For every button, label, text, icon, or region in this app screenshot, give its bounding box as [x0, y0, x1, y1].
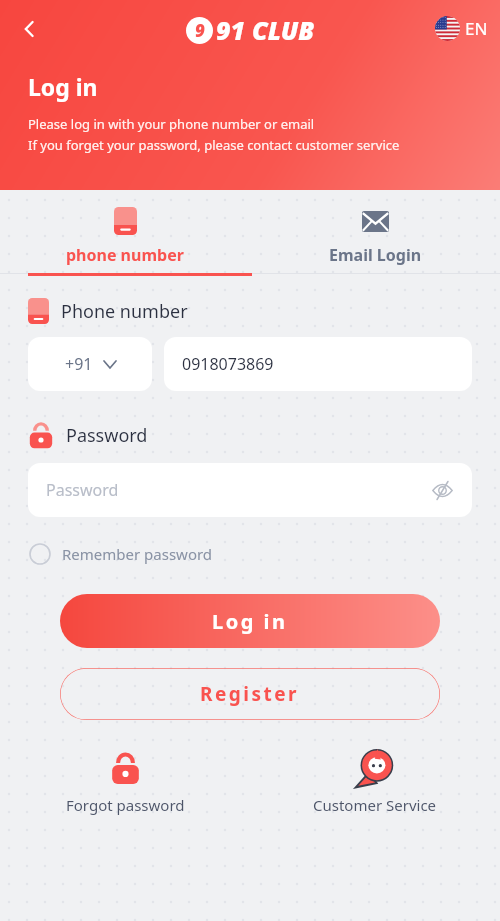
button[interactable]: Forgot password [0, 745, 250, 818]
staticText: Email Login [329, 244, 422, 266]
staticText: Forgot password [66, 795, 185, 815]
button[interactable]: 9 [186, 13, 315, 47]
button[interactable]: Password [28, 463, 472, 517]
staticText: Phone number [61, 299, 188, 324]
button[interactable]: Back [7, 7, 51, 51]
staticText: 0918073869 [182, 353, 274, 375]
staticText: +91 [65, 353, 93, 375]
button[interactable]: Register [60, 668, 440, 720]
button[interactable]: 0918073869 [164, 337, 472, 391]
staticText: Please log in with your phone number or … [28, 115, 315, 133]
staticText: phone number [66, 244, 184, 266]
staticText: Password [46, 479, 428, 501]
staticText: Log in [28, 71, 98, 102]
button[interactable]: phone number [0, 197, 250, 266]
staticText: EN [465, 17, 488, 40]
button[interactable]: +91 [28, 337, 152, 391]
staticText: Password [66, 423, 148, 448]
staticText: Remember password [62, 544, 213, 564]
staticText: If you forget your password, please cont… [28, 136, 400, 154]
staticText: CLUB [252, 13, 315, 47]
staticText: Log in [212, 608, 288, 635]
button[interactable]: Email Login [250, 197, 500, 266]
button[interactable]: Log in [60, 594, 440, 648]
staticText: Customer Service [313, 795, 437, 815]
staticText: 9 [195, 19, 205, 42]
staticText: 91 [216, 13, 246, 47]
button[interactable]: Remember password [28, 540, 214, 568]
button[interactable]: Show password [428, 476, 456, 504]
staticText: Register [200, 681, 300, 707]
button[interactable]: Customer Service [250, 745, 500, 818]
button[interactable]: Language: English [431, 12, 492, 45]
